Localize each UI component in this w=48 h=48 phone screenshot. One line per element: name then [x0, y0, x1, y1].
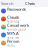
- staticText: Sounds good: [7, 28, 26, 31]
- staticText: Yesterday: [7, 20, 19, 23]
- staticText: MPS A: [7, 31, 19, 36]
- staticText: Chats: [25, 1, 35, 6]
- staticText: Claude: [7, 15, 19, 20]
- staticText: Hello: [7, 44, 15, 47]
- staticText: Casual work: [7, 23, 29, 28]
- staticText: Some text: [7, 36, 19, 39]
- staticText: Person: [7, 39, 19, 44]
- staticText: Passwords: [7, 7, 26, 12]
- staticText: Search: [1, 1, 13, 6]
